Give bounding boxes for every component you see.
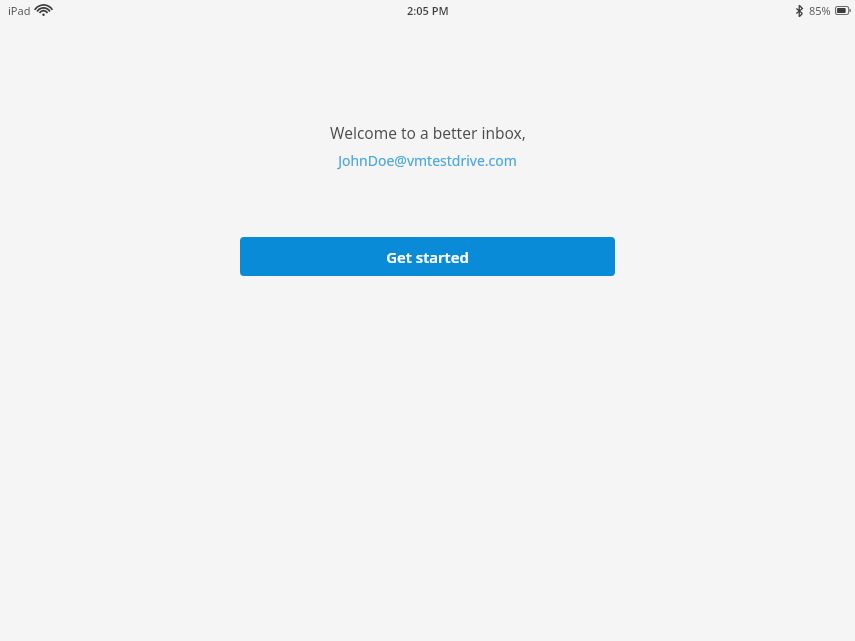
staticText: Get started [386, 247, 469, 267]
staticText: 2:05 PM [407, 3, 449, 18]
button[interactable]: Get started [240, 237, 615, 276]
staticText: 85% [809, 3, 831, 18]
button[interactable]: JohnDoe@vmtestdrive.com [338, 151, 517, 170]
staticText: iPad [8, 3, 31, 18]
staticText: Welcome to a better inbox, [330, 122, 526, 143]
